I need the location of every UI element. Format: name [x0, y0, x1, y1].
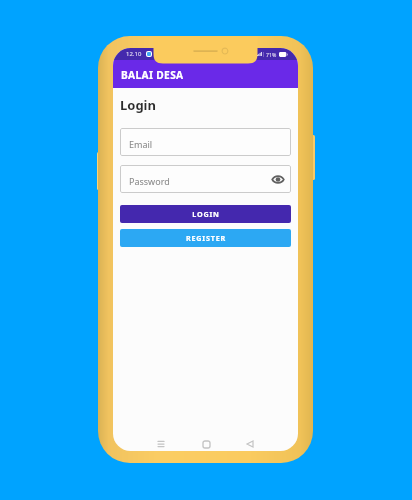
- button[interactable]: Password: [120, 165, 291, 193]
- button[interactable]: LOGIN: [120, 205, 291, 223]
- button[interactable]: Show password: [271, 173, 284, 186]
- button[interactable]: BALAI DESA: [113, 60, 298, 88]
- staticText: 71%: [266, 51, 277, 58]
- staticText: 12.10: [126, 50, 142, 58]
- staticText: BALAI DESA: [121, 68, 184, 82]
- staticText: REGISTER: [186, 233, 226, 243]
- staticText: Login: [120, 96, 156, 114]
- button[interactable]: Back: [242, 437, 258, 451]
- staticText: Email: [129, 138, 153, 150]
- staticText: Password: [129, 175, 170, 187]
- staticText: LOGIN: [192, 209, 220, 219]
- button[interactable]: REGISTER: [120, 229, 291, 247]
- button[interactable]: Recent apps: [153, 437, 169, 451]
- button[interactable]: Email: [120, 128, 291, 156]
- button[interactable]: Home: [198, 437, 214, 451]
